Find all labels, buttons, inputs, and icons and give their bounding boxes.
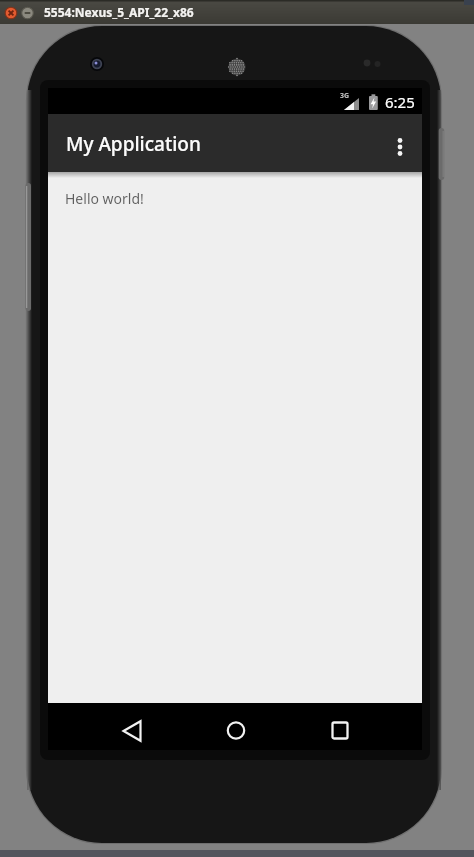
button[interactable] bbox=[288, 703, 392, 750]
button[interactable] bbox=[376, 119, 422, 172]
staticText: My Application bbox=[66, 131, 201, 157]
button[interactable] bbox=[80, 703, 184, 750]
staticText: 6:25 bbox=[385, 92, 415, 112]
staticText: 3G bbox=[340, 91, 350, 101]
button[interactable]: 5554:Nexus_5_API_22_x86 bbox=[0, 0, 474, 24]
staticText: Hello world! bbox=[65, 189, 144, 208]
staticText: 5554:Nexus_5_API_22_x86 bbox=[44, 4, 194, 20]
button[interactable] bbox=[184, 703, 288, 750]
